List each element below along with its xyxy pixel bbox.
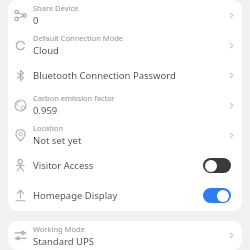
button[interactable]: Default Connection Mode [8,30,242,60]
button[interactable]: Homepage Display [8,180,242,210]
button[interactable]: Homepage Display [203,188,231,203]
staticText: Cloud [33,44,59,57]
staticText: Visitor Access [33,159,94,172]
staticText: 0 [33,14,39,27]
button[interactable]: Visitor Access [8,150,242,180]
staticText: Carbon emission factor [33,93,115,103]
staticText: Not set yet [33,134,82,147]
button[interactable]: Bluetooth Connection Password [8,60,242,90]
button[interactable]: Carbon emission factor [8,90,242,120]
staticText: Standard UPS [33,235,94,248]
staticText: 0.959 [33,104,58,117]
button[interactable]: Share Device [8,0,242,30]
staticText: Bluetooth Connection Password [33,69,176,82]
staticText: Share Device [33,3,79,13]
staticText: Location [33,123,64,133]
button[interactable]: Location [8,120,242,150]
button[interactable]: Working Mode [8,221,242,250]
staticText: Working Mode [33,224,85,234]
staticText: Homepage Display [33,189,118,202]
staticText: Default Connection Mode [33,33,124,43]
button[interactable]: Visitor Access [203,158,231,173]
